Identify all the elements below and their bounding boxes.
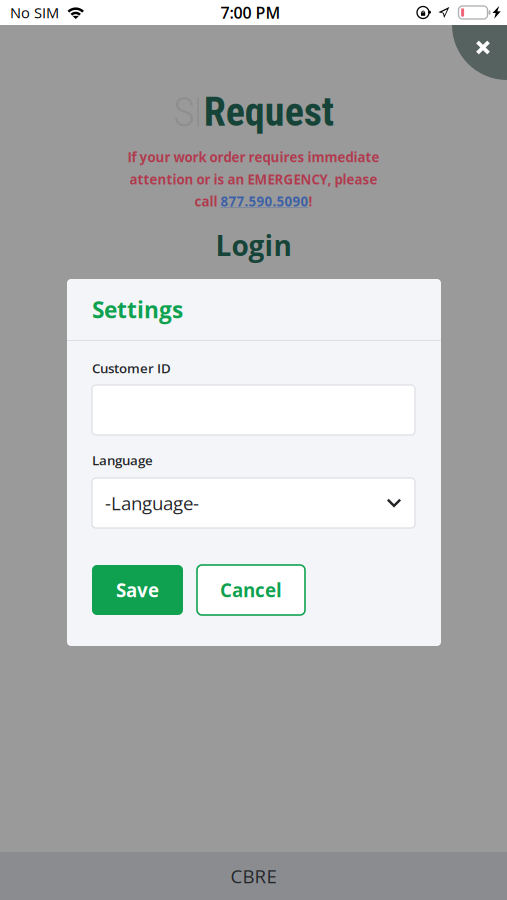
staticText: -Language-: [105, 490, 199, 516]
button[interactable]: -Language-: [92, 478, 415, 528]
staticText: !: [308, 192, 312, 210]
staticText: call: [194, 192, 220, 210]
staticText: Language: [92, 451, 153, 469]
staticText: 877.590.5090: [220, 192, 308, 210]
staticText: Settings: [92, 294, 183, 325]
staticText: S: [173, 88, 194, 136]
staticText: 7:00 PM: [220, 2, 280, 23]
staticText: If your work order requires immediate: [127, 148, 379, 166]
staticText: attention or is an EMERGENCY, please: [129, 170, 377, 188]
button[interactable]: Cancel: [197, 565, 305, 615]
staticText: Save: [116, 577, 159, 603]
staticText: No SIM: [10, 2, 59, 22]
staticText: Cancel: [220, 577, 282, 603]
staticText: Customer ID: [92, 359, 171, 377]
button[interactable]: Close: [452, 0, 507, 80]
staticText: CBRE: [230, 863, 276, 889]
staticText: Request: [204, 89, 334, 135]
staticText: Login: [215, 226, 291, 264]
button[interactable]: 877.590.5090: [220, 192, 308, 210]
button[interactable]: Save: [92, 565, 183, 615]
